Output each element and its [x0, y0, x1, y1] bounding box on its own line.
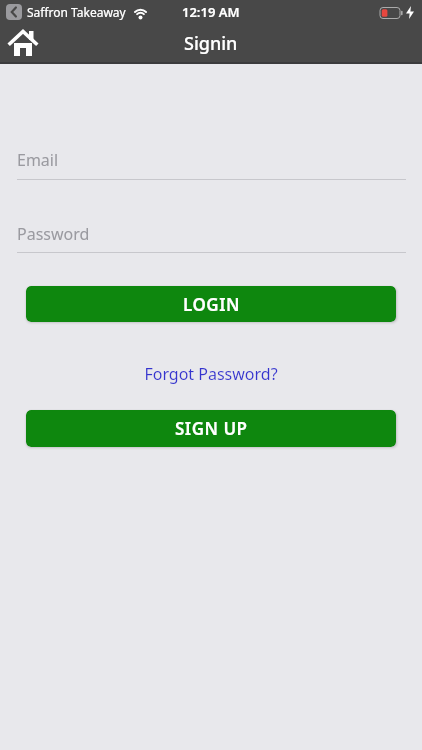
button[interactable]	[8, 28, 38, 58]
button[interactable]: Password	[0, 223, 422, 253]
staticText: LOGIN	[183, 293, 240, 316]
button[interactable]: Forgot Password?	[144, 363, 278, 385]
staticText: Saffron Takeaway	[27, 4, 126, 20]
staticText: 12:19 AM	[182, 3, 240, 21]
button[interactable]: SIGN UP	[26, 410, 396, 447]
staticText: Password	[17, 223, 90, 245]
button[interactable]: Email	[0, 149, 422, 180]
staticText: SIGN UP	[175, 417, 248, 440]
staticText: Signin	[184, 31, 238, 56]
staticText: Email	[17, 149, 59, 171]
button[interactable]: LOGIN	[26, 286, 396, 322]
